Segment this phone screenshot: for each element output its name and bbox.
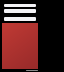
button[interactable]: [2, 23, 38, 69]
button[interactable]: [4, 17, 36, 21]
button[interactable]: [4, 9, 36, 13]
button[interactable]: [4, 4, 36, 7]
